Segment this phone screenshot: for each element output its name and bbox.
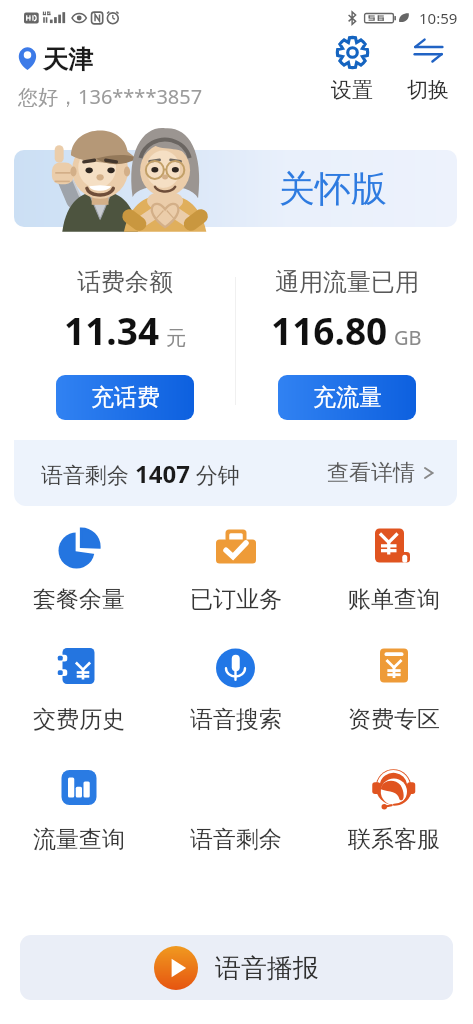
staticText: 分钟 xyxy=(190,459,240,489)
button[interactable]: 语音剩余 xyxy=(14,440,457,506)
staticText: 切换 xyxy=(407,77,449,103)
staticText: 设置 xyxy=(331,77,373,103)
staticText: 联系客服 xyxy=(348,825,440,854)
staticText: 语音搜索 xyxy=(190,705,282,734)
staticText: 元 xyxy=(166,326,186,351)
staticText: 套餐余量 xyxy=(33,585,125,614)
staticText: 1407 xyxy=(135,457,190,490)
button[interactable]: 流量查询 xyxy=(0,750,157,870)
staticText: 资费专区 xyxy=(348,705,440,734)
button[interactable]: 切换 xyxy=(397,36,459,103)
staticText: 话费余额 xyxy=(77,267,173,297)
button[interactable]: 交费历史 xyxy=(0,630,157,750)
button[interactable]: 资费专区 xyxy=(315,630,473,750)
staticText: 10:59 xyxy=(419,8,458,28)
button[interactable]: 套餐余量 xyxy=(0,510,157,630)
staticText: 11.34 xyxy=(64,305,160,355)
staticText: 账单查询 xyxy=(348,585,440,614)
button[interactable]: 语音剩余 xyxy=(157,750,315,870)
staticText: 关怀版 xyxy=(279,166,387,211)
button[interactable]: 充流量 xyxy=(278,375,416,420)
staticText: 语音剩余 xyxy=(190,825,282,854)
staticText: 充流量 xyxy=(313,383,382,412)
button[interactable]: 设置 xyxy=(321,36,383,103)
button[interactable]: 关怀版 xyxy=(14,132,457,227)
button[interactable]: 账单查询 xyxy=(315,510,473,630)
staticText: 已订业务 xyxy=(190,585,282,614)
staticText: 通用流量已用 xyxy=(275,267,419,297)
staticText: 语音播报 xyxy=(215,952,319,985)
button[interactable]: 充话费 xyxy=(56,375,194,420)
staticText: 充话费 xyxy=(91,383,160,412)
staticText: 您好，136****3857 xyxy=(18,83,203,110)
staticText: 语音剩余 xyxy=(41,459,135,489)
staticText: 查看详情 xyxy=(327,459,415,487)
other: 播放语音播报 xyxy=(154,946,198,990)
staticText: 流量查询 xyxy=(33,825,125,854)
button[interactable]: 语音搜索 xyxy=(157,630,315,750)
staticText: GB xyxy=(394,324,422,351)
button[interactable]: 播放语音播报 xyxy=(20,935,453,1000)
staticText: 交费历史 xyxy=(33,705,125,734)
button[interactable]: 已订业务 xyxy=(157,510,315,630)
staticText: 116.80 xyxy=(271,305,388,355)
staticText: 天津 xyxy=(43,44,93,75)
button[interactable]: 联系客服 xyxy=(315,750,473,870)
